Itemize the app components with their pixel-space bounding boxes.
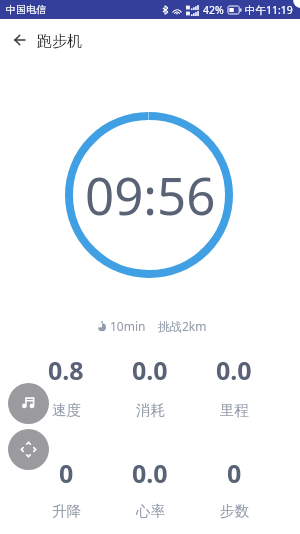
staticText: 步数 (220, 502, 249, 520)
button[interactable]: Fullscreen (8, 429, 49, 470)
staticText: 跑步机 (37, 32, 82, 51)
staticText: 心率 (136, 502, 165, 520)
staticText: 0.0 (216, 353, 252, 387)
staticText: 中国电信 (6, 3, 46, 16)
staticText: 0 (59, 456, 74, 490)
staticText: 中午11:19 (245, 3, 293, 17)
button[interactable]: Back (4, 25, 36, 57)
staticText: 升降 (52, 502, 81, 520)
staticText: 09:56 (85, 160, 216, 229)
staticText: 0.0 (132, 353, 168, 387)
staticText: 挑战2km (158, 318, 207, 334)
staticText: 0 (227, 456, 242, 490)
staticText: 消耗 (136, 401, 165, 419)
staticText: 0.0 (132, 456, 168, 490)
staticText: 里程 (220, 401, 249, 419)
staticText: 10min (110, 318, 146, 334)
staticText: 0.8 (48, 353, 84, 387)
staticText: 速度 (52, 401, 81, 419)
button[interactable]: Music (8, 383, 49, 424)
staticText: 42% (203, 3, 224, 17)
